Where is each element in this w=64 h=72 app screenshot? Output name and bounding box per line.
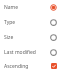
staticText: Name: [4, 4, 50, 11]
button[interactable]: Ascending: [0, 60, 64, 72]
button[interactable]: Type: [0, 15, 64, 30]
other: Name selected: [50, 4, 57, 11]
other: Select Type: [50, 19, 57, 26]
button[interactable]: Last modified: [0, 45, 64, 60]
staticText: Last modified: [4, 49, 50, 56]
button[interactable]: Name: [0, 0, 64, 15]
other: Ascending checked: [51, 63, 57, 69]
staticText: Type: [4, 19, 50, 26]
staticText: Size: [4, 34, 50, 41]
other: Select Last modified: [50, 49, 57, 56]
other: Select Size: [50, 34, 57, 41]
staticText: Ascending: [4, 63, 51, 70]
button[interactable]: Size: [0, 30, 64, 45]
